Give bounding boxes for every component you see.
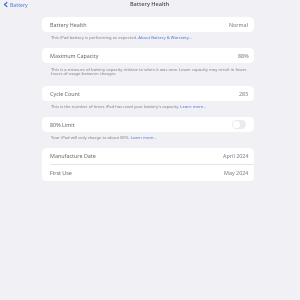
- button[interactable]: 80% Limit: [42, 117, 254, 132]
- button[interactable]: 80% Limit, off: [232, 120, 246, 129]
- button[interactable]: Maximum Capacity: [42, 48, 254, 63]
- staticText: This iPad battery is performing as expec…: [51, 35, 252, 41]
- staticText: Cycle Count: [50, 90, 80, 97]
- staticText: 80% Limit: [50, 121, 75, 128]
- button[interactable]: Back to Battery: [1, 0, 30, 10]
- staticText: 88%: [238, 52, 249, 59]
- staticText: Your iPad will only charge to about 80%.…: [51, 135, 252, 141]
- staticText: Maximum Capacity: [50, 52, 99, 59]
- button[interactable]: First Use: [42, 165, 254, 180]
- staticText: 285: [239, 90, 249, 97]
- staticText: Manufacture Date: [50, 152, 96, 159]
- staticText: This is a measure of battery capacity re…: [51, 67, 252, 77]
- staticText: This is the number of times iPad has use…: [51, 104, 252, 110]
- button[interactable]: Battery Health: [42, 17, 254, 32]
- staticText: May 2024: [224, 169, 249, 176]
- staticText: Normal: [229, 21, 249, 28]
- button[interactable]: Manufacture Date: [42, 148, 254, 163]
- staticText: April 2024: [223, 152, 249, 159]
- staticText: First Use: [50, 169, 72, 176]
- staticText: Battery Health: [130, 0, 170, 7]
- button[interactable]: Cycle Count: [42, 86, 254, 101]
- staticText: Battery: [10, 1, 28, 8]
- staticText: Battery Health: [50, 21, 87, 28]
